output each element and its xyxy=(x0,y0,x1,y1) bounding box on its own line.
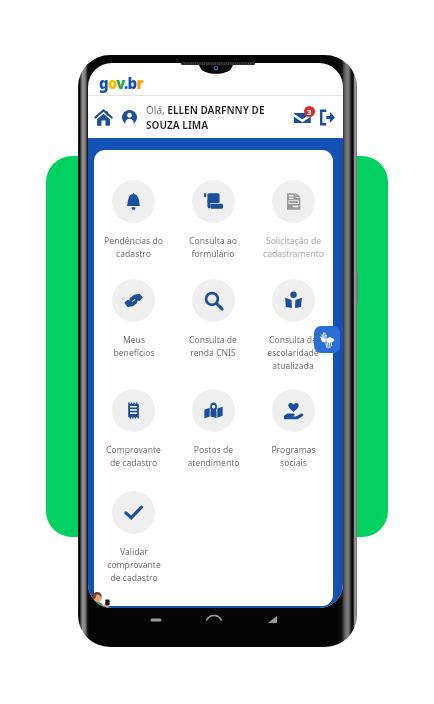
button[interactable]: Solicitação de cadastramento xyxy=(253,180,333,260)
staticText: 3 xyxy=(307,107,312,117)
staticText: Consulta de escolaridade atualizada xyxy=(267,334,319,372)
staticText: Validar comprovante de cadastro xyxy=(107,546,161,584)
button[interactable]: Consulta de escolaridade atualizada xyxy=(253,279,333,372)
button[interactable]: Mensagens xyxy=(294,107,314,127)
button[interactable]: Início xyxy=(93,107,113,127)
staticText: Pendências do cadastro xyxy=(104,235,163,260)
staticText: Programas sociais xyxy=(271,444,316,469)
staticText: Meus benefícios xyxy=(113,334,155,359)
button[interactable]: Sair xyxy=(319,109,335,125)
staticText: gov.br xyxy=(99,73,143,93)
staticText: Solicitação de cadastramento xyxy=(263,235,324,260)
staticText: Postos de atendimento xyxy=(187,444,240,469)
staticText: Consulta ao formulário xyxy=(189,235,237,260)
button[interactable]: Programas sociais xyxy=(253,389,333,469)
button[interactable]: Postos de atendimento xyxy=(173,389,253,469)
button[interactable]: Consulta de renda CNIS xyxy=(173,279,253,359)
button[interactable]: Consulta ao formulário xyxy=(173,180,253,260)
button[interactable]: VLibras acessibilidade xyxy=(314,326,340,353)
button[interactable]: Validar comprovante de cadastro xyxy=(94,491,173,584)
button[interactable]: Meus benefícios xyxy=(94,279,173,359)
button[interactable]: Pendências do cadastro xyxy=(94,180,173,260)
button[interactable]: Perfil xyxy=(121,109,138,126)
staticText: Consulta de renda CNIS xyxy=(189,334,237,359)
button[interactable]: Comprovante de cadastro xyxy=(94,389,173,469)
staticText: Olá, ELLEN DARFNNY DE SOUZA LIMA xyxy=(146,103,274,132)
staticText: Comprovante de cadastro xyxy=(106,444,161,469)
